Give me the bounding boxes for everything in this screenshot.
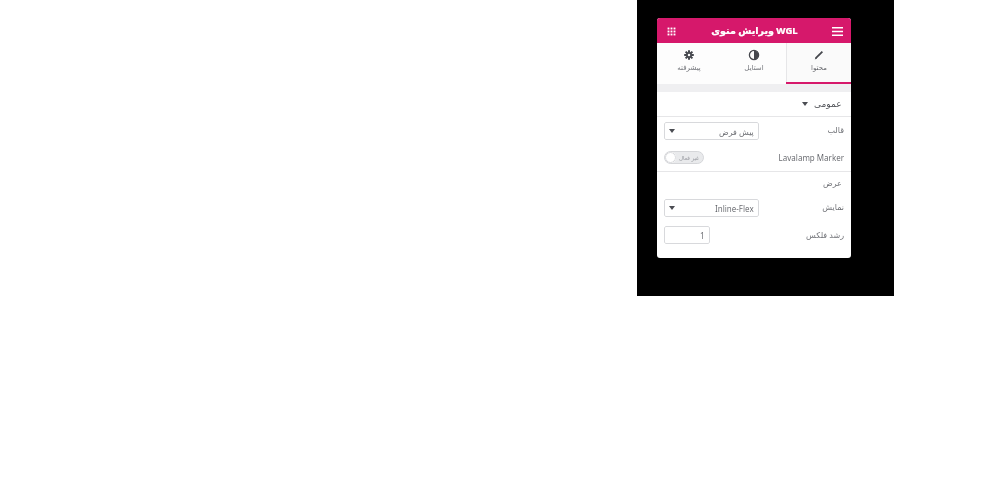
button[interactable]: Inline-Flex [657, 194, 851, 221]
button[interactable]: 1 [664, 226, 710, 244]
staticText: ویرایش منوی WGL [711, 24, 798, 37]
button[interactable]: Lavalamp Marker toggle [664, 151, 704, 164]
staticText: عمومی [814, 99, 842, 109]
staticText: Inline-Flex [715, 203, 754, 214]
button[interactable]: پیشرفته [657, 43, 721, 84]
button[interactable]: Inline-Flex [664, 199, 759, 217]
button[interactable]: پیش فرض [657, 117, 851, 144]
staticText: Lavalamp Marker [778, 152, 844, 163]
button[interactable]: استایل [721, 43, 786, 84]
staticText: محتوا [811, 64, 827, 72]
button[interactable]: Menu [828, 22, 846, 40]
staticText: رشد فلکس [806, 229, 844, 240]
staticText: پیشرفته [677, 64, 701, 72]
staticText: عرض [823, 179, 842, 188]
staticText: نمایش [822, 203, 844, 212]
staticText: پیش فرض [719, 126, 754, 137]
button[interactable]: عمومی [657, 92, 851, 116]
button[interactable]: پیش فرض [664, 122, 759, 140]
staticText: استایل [744, 64, 764, 72]
button[interactable]: Apps [662, 22, 680, 40]
staticText: غیر فعال [679, 154, 699, 161]
staticText: قالب [827, 126, 844, 135]
button[interactable]: Lavalamp Marker toggle [657, 144, 851, 171]
staticText: 1 [700, 230, 705, 241]
button[interactable]: 1 [657, 221, 851, 248]
button[interactable]: محتوا [786, 43, 851, 84]
